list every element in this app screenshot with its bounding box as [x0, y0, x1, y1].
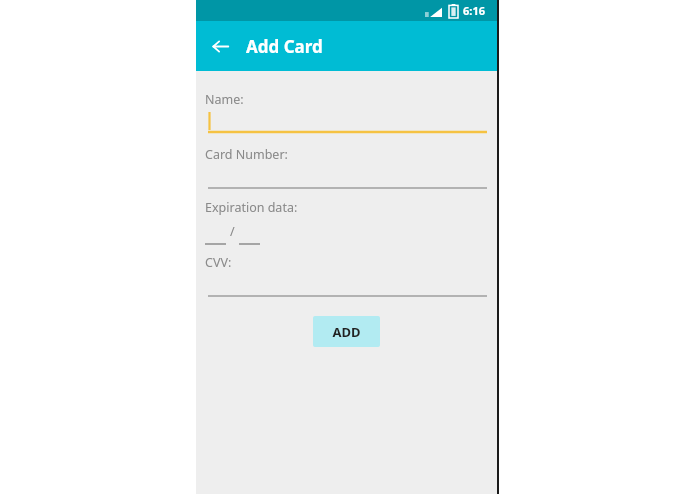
- staticText: Name:: [205, 91, 244, 108]
- staticText: /: [230, 223, 235, 240]
- staticText: Expiration data:: [205, 199, 298, 216]
- button[interactable]: [208, 111, 487, 133]
- staticText: Add Card: [246, 35, 323, 58]
- button[interactable]: [208, 167, 487, 189]
- staticText: CVV:: [205, 254, 232, 271]
- button[interactable]: Back: [202, 28, 238, 64]
- button[interactable]: Expiration month: [205, 223, 226, 245]
- staticText: Card Number:: [205, 146, 288, 163]
- button[interactable]: Expiration year: [239, 223, 260, 245]
- staticText: 6:16: [463, 3, 485, 18]
- button[interactable]: ADD: [313, 316, 380, 347]
- staticText: ADD: [332, 323, 361, 341]
- button[interactable]: [208, 275, 487, 297]
